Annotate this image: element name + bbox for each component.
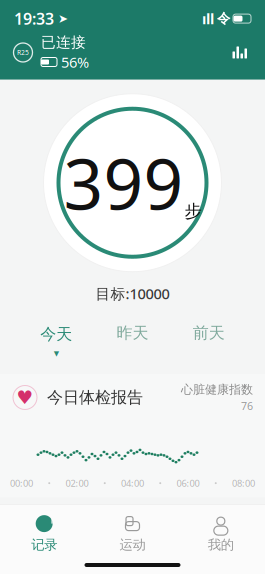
button[interactable]: 统计 bbox=[226, 39, 253, 65]
staticText: ıll bbox=[202, 9, 214, 28]
staticText: 昨天 bbox=[116, 323, 148, 343]
staticText: 56% bbox=[61, 52, 89, 72]
button[interactable]: 记录 bbox=[0, 512, 88, 555]
staticText: 00:00 bbox=[10, 477, 33, 489]
staticText: 令 bbox=[217, 10, 230, 27]
staticText: 我的 bbox=[208, 537, 234, 553]
staticText: 06:00 bbox=[176, 477, 199, 489]
staticText: 19:33 bbox=[14, 8, 54, 29]
staticText: 04:00 bbox=[121, 477, 144, 489]
staticText: 已连接 bbox=[41, 33, 86, 51]
staticText: 今日体检报告 bbox=[47, 388, 143, 407]
staticText: 运动 bbox=[119, 537, 145, 553]
button[interactable]: 前天 bbox=[171, 321, 247, 362]
staticText: 目标:10000 bbox=[95, 284, 169, 303]
staticText: 08:00 bbox=[232, 477, 255, 489]
staticText: 步 bbox=[184, 200, 201, 222]
button[interactable]: ♥ bbox=[0, 374, 265, 421]
staticText: ➤ bbox=[54, 12, 68, 25]
staticText: 76 bbox=[241, 399, 253, 413]
staticText: 心脏健康指数 bbox=[181, 382, 253, 397]
button[interactable]: 今天 bbox=[18, 322, 94, 361]
button[interactable]: 我的 bbox=[177, 512, 265, 555]
staticText: 今天 bbox=[40, 324, 72, 344]
staticText: 前天 bbox=[193, 323, 225, 343]
staticText: 399 bbox=[63, 137, 183, 229]
button[interactable]: 昨天 bbox=[94, 321, 171, 362]
staticText: R25 bbox=[17, 48, 29, 57]
staticText: ♥ bbox=[16, 387, 33, 408]
staticText: ▾ bbox=[54, 347, 59, 359]
button[interactable]: 运动 bbox=[88, 512, 177, 555]
staticText: 02:00 bbox=[65, 477, 88, 489]
staticText: 记录 bbox=[31, 537, 57, 553]
